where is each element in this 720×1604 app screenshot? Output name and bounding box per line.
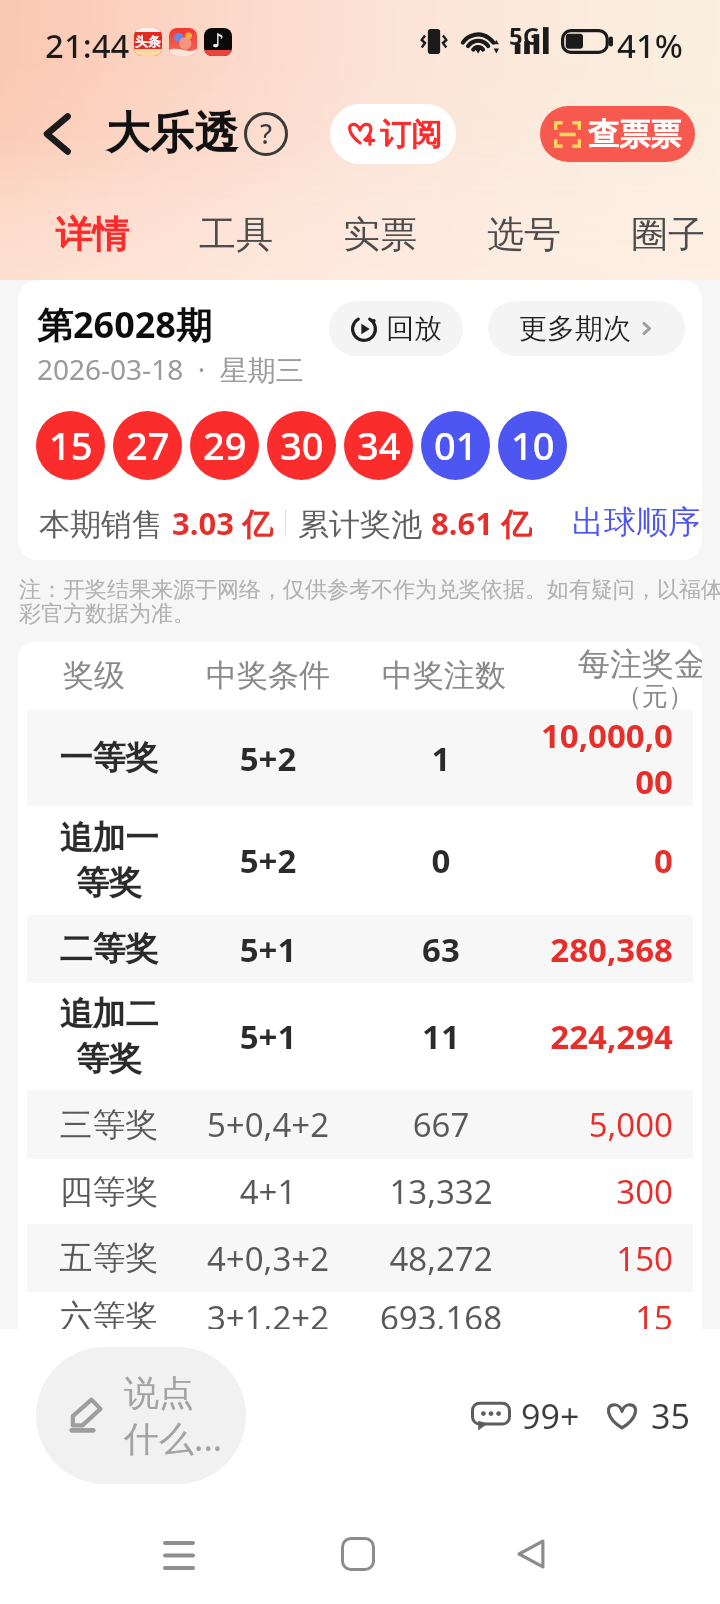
staticText: 4+0,3+2 — [188, 1236, 348, 1281]
button[interactable]: 圈子 — [599, 202, 720, 266]
staticText: 10 — [511, 419, 555, 471]
staticText: ? — [260, 115, 273, 152]
staticText: 详情 — [55, 211, 129, 258]
staticText: 4+1 — [188, 1169, 348, 1214]
button[interactable]: 实票 — [311, 202, 449, 266]
staticText: 30 — [280, 419, 324, 471]
staticText: 5+2 — [188, 736, 348, 781]
staticText: 0 — [533, 838, 673, 883]
button[interactable]: 订阅 — [330, 104, 456, 164]
staticText: 693,168 — [361, 1295, 521, 1340]
button[interactable]: 三等奖 — [27, 1090, 693, 1159]
staticText: 四等奖 — [50, 1171, 168, 1213]
staticText: 更多期次 — [519, 311, 631, 346]
staticText: 查票票 — [588, 115, 681, 154]
button[interactable]: 99+ — [471, 1391, 580, 1441]
button[interactable]: 一等奖 — [27, 710, 693, 806]
staticText: 圈子 — [631, 211, 705, 258]
staticText: 工具 — [199, 211, 273, 258]
button[interactable]: 详情 — [23, 202, 161, 266]
staticText: 5+2 — [188, 838, 348, 883]
staticText: 3+1,2+2 — [188, 1295, 348, 1340]
staticText: 150 — [533, 1236, 673, 1281]
button[interactable]: 选号 — [455, 202, 593, 266]
staticText: 每注奖金 — [578, 644, 702, 684]
staticText: 注：开奖结果来源于网络，仅供参考不作为兑奖依据。如有疑问，以福体 彩官方数据为准… — [19, 576, 720, 627]
button[interactable]: 五等奖 — [27, 1224, 693, 1292]
staticText: 34 — [357, 419, 401, 471]
staticText: 一等奖 — [50, 737, 168, 779]
staticText: 0 — [361, 838, 521, 883]
button[interactable]: 查票票 — [540, 106, 695, 162]
button[interactable]: 追加二等奖 — [27, 983, 693, 1090]
button[interactable]: 二等奖 — [27, 915, 693, 983]
staticText: 二等奖 — [50, 928, 168, 970]
staticText: 5+0,4+2 — [188, 1102, 348, 1147]
button[interactable]: Back — [502, 1524, 562, 1584]
staticText: 本期销售 — [39, 502, 172, 542]
staticText: 224,294 — [533, 1014, 673, 1059]
button[interactable]: Home — [328, 1524, 388, 1584]
button[interactable]: Recent apps — [149, 1524, 209, 1584]
staticText: 出球顺序 — [572, 502, 700, 542]
staticText: 27 — [126, 419, 170, 471]
staticText: 三等奖 — [50, 1104, 168, 1146]
staticText: 13,332 — [361, 1169, 521, 1214]
staticText: ♪ — [212, 29, 225, 51]
staticText: 99+ — [521, 1393, 580, 1439]
staticText: 3.03 亿 — [172, 502, 273, 542]
staticText: 第26028期 — [37, 300, 212, 349]
staticText: 10,000,000 — [533, 713, 673, 804]
staticText: 11 — [361, 1014, 521, 1059]
staticText: 01 — [434, 419, 478, 471]
staticText: 六等奖 — [50, 1296, 168, 1338]
button[interactable]: 追加一等奖 — [27, 806, 693, 915]
staticText: 五等奖 — [50, 1237, 168, 1279]
button[interactable]: 出球顺序 — [572, 500, 700, 544]
staticText: 2026-03-18 · 星期三 — [37, 350, 304, 388]
button[interactable]: Back — [26, 103, 88, 165]
staticText: 说点什么... — [124, 1371, 228, 1462]
button[interactable]: 35 — [604, 1391, 690, 1441]
staticText: 中奖注数 — [382, 656, 506, 695]
staticText: 回放 — [386, 311, 442, 346]
button[interactable]: 回放 — [329, 301, 463, 356]
staticText: 累计奖池 — [298, 502, 431, 542]
button[interactable]: 说点什么... — [36, 1347, 246, 1484]
staticText: 5G — [509, 19, 541, 52]
staticText: 1 — [361, 736, 521, 781]
staticText: 41% — [617, 23, 683, 68]
staticText: 667 — [361, 1102, 521, 1147]
staticText: 48,272 — [361, 1236, 521, 1281]
staticText: 280,368 — [533, 927, 673, 972]
staticText: 8.61 亿 — [431, 502, 532, 542]
staticText: 实票 — [343, 211, 417, 258]
staticText: 300 — [533, 1169, 673, 1214]
staticText: 追加二等奖 — [50, 993, 168, 1080]
staticText: 头条 — [135, 33, 161, 49]
staticText: 大乐透 — [106, 106, 238, 161]
staticText: 29 — [203, 419, 247, 471]
button[interactable]: 工具 — [167, 202, 305, 266]
staticText: 21:44 — [45, 23, 130, 68]
staticText: 订阅 — [380, 115, 442, 154]
staticText: 5,000 — [533, 1102, 673, 1147]
staticText: 5+1 — [188, 1014, 348, 1059]
button[interactable]: 更多期次 — [488, 301, 685, 356]
staticText: （元） — [616, 680, 694, 713]
staticText: 15 — [533, 1295, 673, 1340]
staticText: 35 — [651, 1393, 690, 1439]
staticText: 63 — [361, 927, 521, 972]
staticText: 奖级 — [63, 656, 125, 695]
button[interactable]: Help — [244, 112, 288, 156]
staticText: 15 — [49, 419, 93, 471]
staticText: 追加一等奖 — [50, 817, 168, 904]
staticText: 选号 — [487, 211, 561, 258]
staticText: 中奖条件 — [206, 656, 330, 695]
staticText: 5+1 — [188, 927, 348, 972]
button[interactable]: 六等奖 — [27, 1292, 693, 1342]
button[interactable]: 四等奖 — [27, 1159, 693, 1224]
